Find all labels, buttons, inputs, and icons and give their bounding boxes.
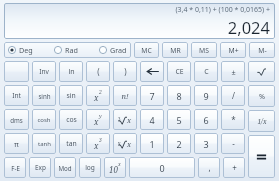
button[interactable]: 1/x <box>248 110 275 132</box>
button[interactable]: ( <box>86 61 110 82</box>
button[interactable]: M- <box>249 42 275 58</box>
button[interactable]: - <box>221 133 245 154</box>
button[interactable]: C <box>194 61 218 82</box>
button[interactable]: Equals <box>248 135 275 178</box>
staticText: π <box>14 139 19 149</box>
button[interactable]: 5 <box>167 109 191 130</box>
staticText: Grad <box>110 45 127 55</box>
button[interactable]: 9 <box>194 85 218 106</box>
staticText: sinh <box>38 92 51 100</box>
button[interactable]: 3 <box>194 133 218 154</box>
staticText: 2,024 <box>227 16 270 37</box>
button[interactable]: Deg <box>8 45 33 55</box>
button[interactable]: , <box>198 157 220 178</box>
button[interactable]: tan <box>59 133 83 154</box>
button[interactable]: F-E <box>4 157 26 178</box>
staticText: tanh <box>38 140 51 148</box>
staticText: (3,4 * 0,11) + (100 * 0,0165) + <box>175 5 270 15</box>
button[interactable]: MC <box>134 42 159 58</box>
button[interactable]: x to the power of y <box>86 109 110 130</box>
button[interactable]: + <box>223 157 245 178</box>
staticText: sin <box>66 91 76 100</box>
staticText: 1/x <box>257 117 267 126</box>
button[interactable]: x to the power of 3 <box>86 133 110 154</box>
button[interactable]: Rad <box>54 45 78 55</box>
button[interactable]: % <box>248 85 275 107</box>
staticText: ( <box>97 66 100 77</box>
staticText: 2 <box>176 138 182 150</box>
button[interactable]: 10 to the power of x <box>104 157 126 178</box>
staticText: x <box>94 116 99 127</box>
button[interactable]: n! <box>113 85 137 106</box>
staticText: * <box>231 114 236 125</box>
button[interactable]: x to the power of 2 <box>86 85 110 106</box>
staticText: x <box>127 139 132 149</box>
button[interactable]: 1 <box>140 133 164 154</box>
staticText: 1 <box>149 138 155 150</box>
staticText: M- <box>258 46 267 55</box>
staticText: x <box>118 161 121 168</box>
staticText: C <box>204 67 209 77</box>
staticText: + <box>232 162 237 173</box>
button[interactable]: 4 <box>140 109 164 130</box>
staticText: x <box>94 92 99 103</box>
staticText: Mod <box>58 164 72 172</box>
staticText: log <box>85 163 95 172</box>
button[interactable]: dms <box>4 109 29 130</box>
staticText: 3 <box>118 116 121 122</box>
button[interactable]: log <box>79 157 101 178</box>
button[interactable]: cos <box>59 109 83 130</box>
button[interactable]: 8 <box>167 85 191 106</box>
button[interactable]: / <box>221 85 245 106</box>
staticText: x <box>127 115 132 125</box>
button[interactable]: Backspace <box>140 61 164 82</box>
button[interactable]: 0 <box>129 157 195 178</box>
button[interactable]: Exp <box>29 157 51 178</box>
button[interactable]: Cube root of x <box>113 109 137 130</box>
button[interactable]: ln <box>59 61 83 82</box>
staticText: ) <box>124 66 127 77</box>
staticText: 7 <box>149 90 155 102</box>
button[interactable]: tanh <box>32 133 56 154</box>
button[interactable]: 7 <box>140 85 164 106</box>
button[interactable]: Grad <box>99 45 127 55</box>
staticText: 10 <box>109 164 118 175</box>
staticText: cos <box>66 115 77 124</box>
staticText: x <box>94 140 99 151</box>
staticText: n! <box>121 91 129 101</box>
button[interactable]: ± <box>221 61 245 82</box>
button[interactable]: MR <box>162 42 188 58</box>
button[interactable]: ) <box>113 61 137 82</box>
button[interactable]: 2 <box>167 133 191 154</box>
staticText: dms <box>10 116 23 124</box>
button[interactable]: M+ <box>220 42 246 58</box>
button[interactable]: Int <box>4 85 29 106</box>
staticText: 8 <box>176 90 182 102</box>
staticText: 3 <box>99 137 102 144</box>
staticText: CE <box>175 67 184 76</box>
button[interactable]: sin <box>59 85 83 106</box>
staticText: 5 <box>176 114 182 126</box>
staticText: Int <box>12 91 21 100</box>
button[interactable]: Mod <box>54 157 76 178</box>
staticText: 3 <box>203 138 209 150</box>
staticText: ± <box>231 67 236 77</box>
staticText: cosh <box>37 116 51 124</box>
button[interactable]: CE <box>167 61 191 82</box>
button[interactable]: * <box>221 109 245 130</box>
button[interactable]: Square root <box>248 61 275 82</box>
staticText: 9 <box>203 90 209 102</box>
button[interactable]: y-th root of x <box>113 133 137 154</box>
button[interactable]: π <box>4 133 29 154</box>
staticText: % <box>259 91 265 101</box>
staticText: 4 <box>149 114 155 126</box>
staticText: , <box>208 162 211 173</box>
button[interactable]: Inv <box>32 61 56 82</box>
button[interactable] <box>4 61 29 82</box>
staticText: 2 <box>99 89 102 96</box>
button[interactable]: 6 <box>194 109 218 130</box>
button[interactable]: MS <box>191 42 217 58</box>
staticText: - <box>232 138 235 149</box>
button[interactable]: sinh <box>32 85 56 106</box>
button[interactable]: cosh <box>32 109 56 130</box>
